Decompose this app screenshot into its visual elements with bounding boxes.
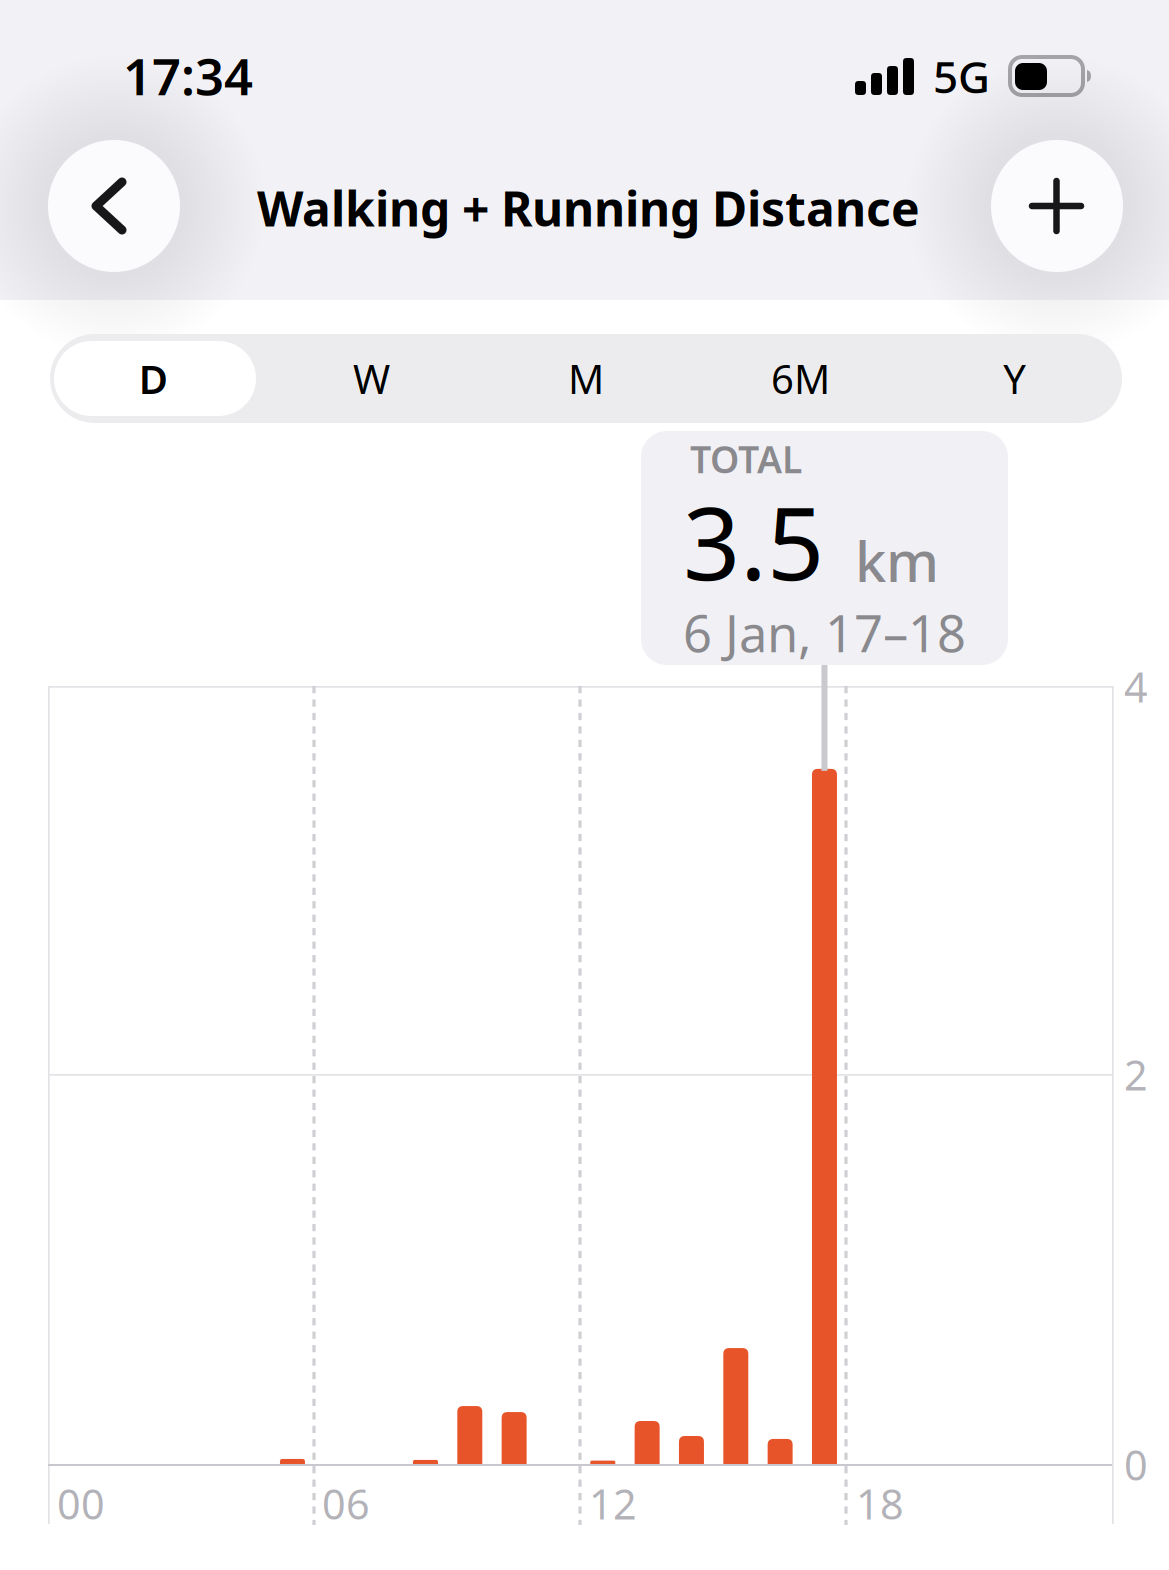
staticText: 6 Jan, 17–18 [683, 599, 966, 666]
staticText: 18 [856, 1476, 904, 1531]
button[interactable]: M [479, 334, 693, 423]
staticText: 4 [1124, 659, 1148, 714]
staticText: 2 [1124, 1047, 1148, 1102]
staticText: M [568, 352, 604, 405]
button[interactable]: Add data [991, 140, 1123, 272]
staticText: Y [1003, 352, 1026, 405]
staticText: 12 [589, 1476, 637, 1531]
button[interactable]: D [50, 334, 264, 423]
staticText: D [139, 352, 168, 405]
staticText: TOTAL [690, 434, 802, 484]
button[interactable]: W [264, 334, 479, 423]
staticText: km [855, 523, 939, 597]
staticText: Walking + Running Distance [257, 176, 920, 240]
button[interactable]: Back [48, 140, 180, 272]
staticText: 06 [322, 1476, 370, 1531]
button[interactable]: Y [908, 334, 1122, 423]
staticText: W [353, 352, 390, 405]
staticText: 6M [771, 352, 830, 405]
staticText: 00 [57, 1476, 105, 1531]
staticText: 17:34 [123, 42, 253, 109]
staticText: 0 [1124, 1437, 1148, 1492]
button[interactable]: 6M [693, 334, 908, 423]
staticText: 5G [933, 47, 990, 105]
staticText: 3.5 [683, 475, 824, 608]
